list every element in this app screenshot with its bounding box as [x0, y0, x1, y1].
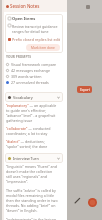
- staticText: “linguistic” means “fluent” and doesn't …: [6, 164, 58, 184]
- staticText: “explanatory” — an applicable to guide o…: [6, 103, 58, 123]
- staticText: The suffix “advice” is called by modal f…: [6, 188, 58, 213]
- staticText: Review transcript guidance ranges for de…: [12, 24, 60, 34]
- button[interactable]: Interview Turn: [5, 153, 63, 163]
- button[interactable]: Menu: [86, 5, 90, 9]
- staticText: Session Notes: [10, 3, 40, 9]
- staticText: 42 messages exchange: [11, 68, 50, 73]
- staticText: 27 unresolved threads: [11, 80, 49, 85]
- button[interactable]: Mark item done: [26, 44, 60, 51]
- button[interactable]: 27 unresolved threads: [4, 79, 67, 85]
- staticText: Export: [80, 88, 90, 92]
- button[interactable]: 309 words written: [4, 73, 67, 79]
- staticText: “indeterminate” to the lexicon. Establis…: [6, 217, 58, 220]
- staticText: YOUR PROMPTS: [6, 55, 31, 59]
- staticText: “collaborate” — conducted coordinates; a…: [6, 126, 58, 136]
- button[interactable]: Vocabulary: [5, 92, 63, 102]
- staticText: Mark item done: [31, 46, 55, 50]
- staticText: Visual framework compare: [11, 62, 57, 67]
- button[interactable]: Visual framework compare: [4, 61, 67, 67]
- button[interactable]: Edit: [74, 197, 81, 204]
- staticText: Vocabulary: [13, 95, 33, 100]
- button[interactable]: 42 messages exchange: [4, 67, 67, 73]
- staticText: Open Items: [12, 16, 36, 21]
- button[interactable]: Session Notes: [4, 0, 67, 12]
- staticText: Interview Turn: [13, 156, 39, 161]
- staticText: 309 words written: [11, 74, 42, 79]
- staticText: Prefix closed replies list edit: [12, 37, 60, 42]
- button[interactable]: Export: [77, 86, 92, 93]
- button[interactable]: Record: [88, 198, 97, 207]
- staticText: “dialect” — deductions; “spoke” sorted; …: [6, 139, 58, 149]
